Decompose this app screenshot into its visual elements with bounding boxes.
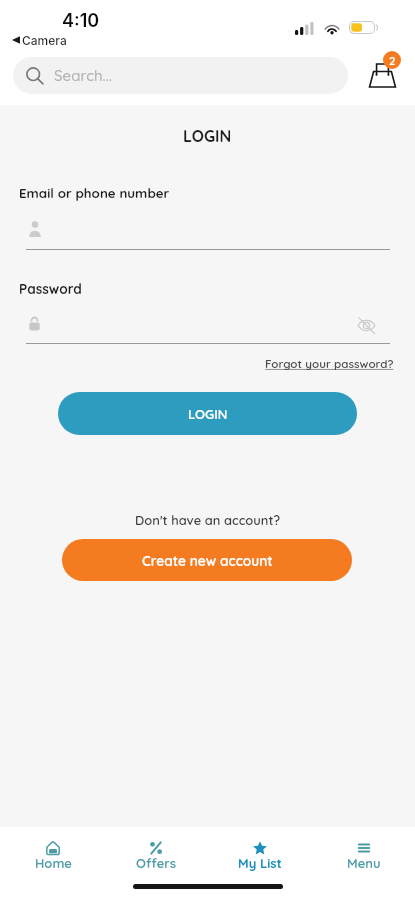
staticText: Offers — [136, 855, 177, 871]
staticText: 4:10 — [62, 10, 100, 32]
staticText: Don't have an account? — [135, 512, 281, 528]
button[interactable]: LOGIN — [58, 392, 357, 435]
staticText: Menu — [347, 855, 381, 871]
button[interactable]: Shopping bag, 2 items — [362, 46, 406, 90]
staticText: LOGIN — [188, 406, 228, 422]
staticText: LOGIN — [183, 126, 232, 146]
button[interactable]: Create new account — [62, 539, 352, 581]
staticText: Email or phone number — [19, 185, 170, 202]
staticText: My List — [238, 855, 282, 871]
staticText: Create new account — [142, 552, 273, 569]
button[interactable]: Menu — [318, 835, 410, 871]
button[interactable]: Forgot your password? — [263, 356, 396, 371]
button[interactable]: My List — [214, 835, 306, 871]
button[interactable]: Offers — [110, 835, 202, 871]
staticText: 2 — [389, 53, 396, 67]
button[interactable]: Show password — [355, 314, 377, 336]
button[interactable]: Home — [7, 835, 99, 871]
staticText: Camera — [22, 33, 67, 48]
staticText: Home — [35, 855, 72, 871]
staticText: Password — [19, 280, 82, 297]
staticText: Forgot your password? — [265, 356, 394, 371]
button[interactable]: Search... — [13, 57, 348, 94]
staticText: Search... — [54, 66, 112, 85]
